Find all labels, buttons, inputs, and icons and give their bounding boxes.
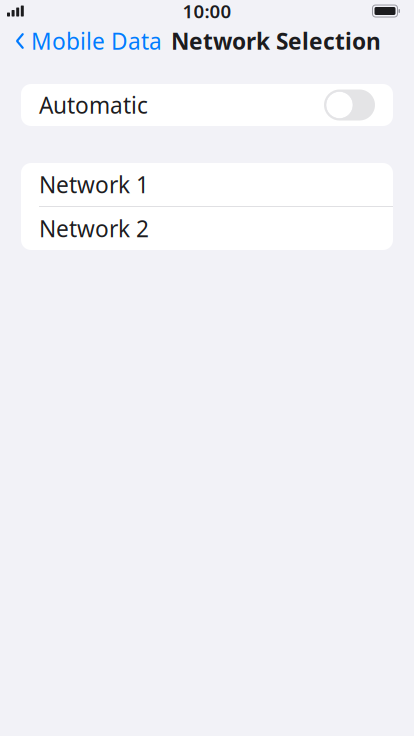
button[interactable]: Network 1 [21, 163, 393, 206]
staticText: 10:00 [182, 0, 231, 23]
staticText: Mobile Data [31, 26, 162, 56]
button[interactable]: Mobile Data [0, 20, 162, 62]
staticText: Network 1 [39, 169, 149, 199]
staticText: Automatic [39, 90, 148, 120]
staticText: Network 2 [39, 213, 149, 243]
button[interactable]: Automatic [21, 84, 393, 126]
staticText: Network Selection [171, 26, 381, 56]
button[interactable]: Network 2 [21, 207, 393, 250]
